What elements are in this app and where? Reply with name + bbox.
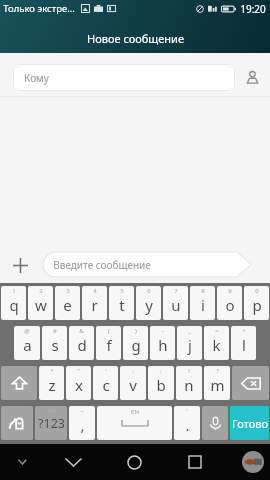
- button[interactable]: =: [204, 326, 229, 360]
- staticText: a: [23, 335, 32, 355]
- button[interactable]: Введите сообщение: [43, 252, 251, 277]
- button[interactable]: 1: [1, 286, 26, 320]
- staticText: m: [210, 375, 225, 395]
- staticText: l: [242, 335, 246, 355]
- staticText: Введите сообщение: [53, 258, 151, 272]
- button[interactable]: 9: [217, 286, 242, 320]
- button[interactable]: ?: [204, 366, 230, 400]
- button[interactable]: @: [14, 326, 40, 360]
- staticText: v: [129, 375, 137, 395]
- button[interactable]: emoji: [1, 406, 33, 440]
- button[interactable]: Кому: [13, 64, 235, 91]
- button[interactable]: 3: [55, 286, 80, 320]
- button[interactable]: Home: [120, 448, 148, 476]
- staticText: EN: [131, 408, 139, 416]
- staticText: +: [242, 327, 246, 335]
- button[interactable]: #: [42, 326, 67, 360]
- button[interactable]: ): [123, 326, 148, 360]
- button[interactable]: !: [176, 366, 202, 400]
- staticText: n: [184, 375, 194, 395]
- button[interactable]: 0: [244, 286, 269, 320]
- staticText: -: [162, 327, 164, 335]
- staticText: i: [201, 295, 205, 315]
- button[interactable]: 4: [82, 286, 107, 320]
- button[interactable]: Menu: [10, 450, 34, 474]
- staticText: j: [188, 335, 192, 355]
- staticText: .: [185, 415, 190, 435]
- staticText: Только экстре...: [3, 2, 75, 15]
- staticText: c: [102, 375, 110, 395]
- staticText: 1: [12, 287, 16, 295]
- staticText: ?: [216, 367, 219, 375]
- staticText: =: [215, 327, 219, 335]
- staticText: p: [252, 295, 262, 315]
- button[interactable]: +: [231, 326, 256, 360]
- button[interactable]: 7: [163, 286, 188, 320]
- button[interactable]: 6: [136, 286, 161, 320]
- staticText: h: [158, 335, 168, 355]
- button[interactable]: back: [232, 366, 269, 400]
- staticText: 2: [39, 287, 43, 295]
- staticText: s: [51, 335, 59, 355]
- button[interactable]: &: [69, 326, 94, 360]
- staticText: Готово: [232, 416, 268, 431]
- staticText: (: [108, 327, 110, 335]
- button[interactable]: :: [120, 366, 146, 400]
- button[interactable]: -: [150, 326, 175, 360]
- staticText: ;: [160, 367, 162, 375]
- staticText: 7: [174, 287, 178, 295]
- staticText: ': [186, 407, 188, 415]
- staticText: &: [79, 327, 84, 335]
- button[interactable]: 2: [28, 286, 53, 320]
- staticText: e: [63, 295, 72, 315]
- staticText: u: [171, 295, 181, 315]
- staticText: ~: [80, 407, 84, 415]
- button[interactable]: (: [96, 326, 121, 360]
- staticText: q: [9, 295, 19, 315]
- button[interactable]: ": [66, 366, 91, 400]
- staticText: 4: [93, 287, 97, 295]
- staticText: _: [188, 327, 191, 335]
- staticText: k: [212, 335, 221, 355]
- button[interactable]: Recents: [181, 448, 209, 476]
- staticText: x: [75, 375, 83, 395]
- staticText: Новое сообщение: [87, 31, 184, 46]
- button[interactable]: 5: [109, 286, 134, 320]
- button[interactable]: Attach: [6, 251, 34, 279]
- staticText: g: [131, 335, 141, 355]
- staticText: !: [188, 367, 190, 375]
- staticText: w: [35, 295, 47, 315]
- staticText: Кому: [24, 71, 49, 85]
- staticText: 3: [66, 287, 70, 295]
- staticText: 6: [147, 287, 151, 295]
- button[interactable]: Back: [59, 448, 87, 476]
- button[interactable]: space: [97, 406, 172, 440]
- staticText: ): [135, 327, 137, 335]
- staticText: 9: [228, 287, 232, 295]
- staticText: *: [50, 367, 54, 375]
- staticText: y: [145, 295, 153, 315]
- staticText: #: [53, 327, 57, 335]
- staticText: d: [77, 335, 87, 355]
- staticText: ": [77, 367, 80, 375]
- button[interactable]: ': [93, 366, 118, 400]
- button[interactable]: 8: [190, 286, 215, 320]
- button[interactable]: <>: [35, 406, 67, 440]
- staticText: r: [91, 295, 98, 315]
- button[interactable]: Add contact: [240, 65, 264, 89]
- staticText: 5: [120, 287, 124, 295]
- button[interactable]: shift: [1, 366, 37, 400]
- button[interactable]: _: [177, 326, 202, 360]
- staticText: ,: [80, 415, 85, 435]
- button[interactable]: Готово: [230, 406, 269, 440]
- staticText: 8: [201, 287, 205, 295]
- staticText: z: [48, 375, 56, 395]
- button[interactable]: *: [39, 366, 64, 400]
- staticText: o: [225, 295, 235, 315]
- button[interactable]: ': [174, 406, 200, 440]
- button[interactable]: mic: [202, 406, 228, 440]
- staticText: :: [132, 367, 134, 375]
- button[interactable]: ~: [69, 406, 95, 440]
- button[interactable]: ;: [148, 366, 174, 400]
